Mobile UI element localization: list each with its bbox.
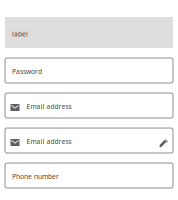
staticText: Email address — [26, 102, 71, 111]
button[interactable]: Phone number — [5, 163, 173, 188]
button[interactable]: Email address — [5, 93, 173, 118]
button[interactable]: label — [5, 17, 173, 48]
staticText: Phone number — [12, 172, 59, 181]
staticText: Password — [12, 67, 42, 76]
staticText: label — [12, 30, 28, 38]
staticText: Email address — [26, 137, 71, 146]
button[interactable]: Password — [5, 58, 173, 83]
button[interactable]: Email address — [5, 128, 173, 153]
